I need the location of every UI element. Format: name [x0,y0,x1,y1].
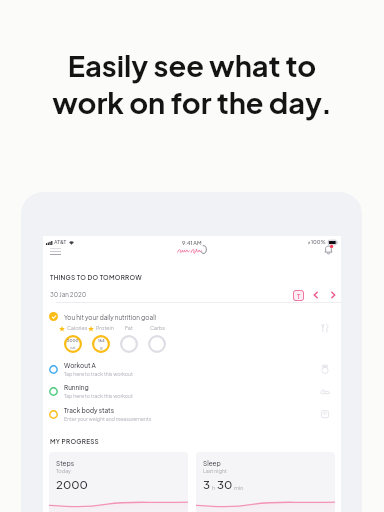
staticText: Enter your weight and measurements [64,416,152,422]
staticText: T [297,292,301,300]
staticText: AT&T [54,239,67,246]
staticText: You hit your daily nutrition goal! [64,313,157,321]
staticText: 30 [217,477,233,491]
button[interactable]: Open navigation menu [45,244,66,259]
staticText: THINGS TO DO TOMORROW [50,273,142,281]
button[interactable]: Today [293,290,304,301]
staticText: 3 [203,477,211,491]
button[interactable]: Next day [327,289,339,301]
staticText: 30 Jan 2020 [50,291,87,299]
staticText: g [100,345,103,350]
staticText: Workout A [64,361,96,369]
staticText: MY PROGRESS [50,437,99,445]
staticText: min [233,484,244,491]
staticText: h [211,484,217,491]
staticText: 100% [311,239,326,246]
button[interactable]: Workout A [43,358,341,380]
button[interactable]: Sweat Style home [177,245,207,255]
staticText: 2000 [56,477,88,491]
staticText: Calories [67,325,87,332]
staticText: Last night [203,468,227,475]
staticText: Easily see what to work on for the day. [0,47,384,121]
staticText: Protein [96,325,114,332]
staticText: Track body stats [64,406,114,414]
staticText: 164 [98,338,105,343]
staticText: Steps [56,459,75,467]
button[interactable]: You hit your daily nutrition goal! [43,306,341,361]
button[interactable]: Sleep [196,452,335,512]
staticText: Sleep [203,459,221,467]
staticText: Today [56,468,71,475]
staticText: Tap here to track this workout [64,371,133,377]
button[interactable]: Steps [49,452,188,512]
staticText: 2000 [67,338,79,343]
button[interactable]: Previous day [310,289,322,301]
staticText: cal [70,345,76,350]
button[interactable]: Track body stats [43,403,341,425]
button[interactable]: Notifications [320,241,337,258]
staticText: Fat [125,325,133,332]
staticText: 9:41 AM [182,239,202,246]
button[interactable]: Running [43,380,341,402]
staticText: Running [64,383,89,391]
staticText: Carbs [150,325,165,332]
staticText: Tap here to track this workout [64,393,133,399]
